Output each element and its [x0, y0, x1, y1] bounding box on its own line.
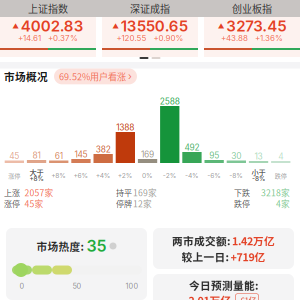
- staticText: -6%: [207, 171, 221, 180]
- staticText: +1.36%: [255, 33, 283, 43]
- staticText: 3218家: [261, 186, 290, 199]
- staticText: 4: [278, 151, 283, 162]
- staticText: 12家: [133, 197, 152, 210]
- staticText: -8%: [229, 171, 243, 180]
- staticText: 市场热度:: [36, 238, 83, 254]
- staticText: -61亿: [237, 294, 256, 300]
- staticText: +8%: [51, 171, 66, 180]
- staticText: +2%: [118, 171, 133, 180]
- staticText: 382: [96, 144, 111, 155]
- staticText: +0.90%: [153, 33, 183, 43]
- staticText: 深证成指: [130, 1, 170, 16]
- staticText: +4%: [96, 171, 111, 180]
- staticText: 4002.83: [21, 17, 84, 35]
- staticText: 61: [55, 151, 63, 161]
- staticText: 492: [184, 142, 199, 153]
- button[interactable]: ▲: [204, 17, 300, 57]
- staticText: 小于: [251, 167, 265, 177]
- staticText: +8%: [29, 175, 43, 182]
- staticText: 169: [141, 149, 154, 160]
- staticText: 2.01万亿: [188, 292, 231, 300]
- staticText: +6%: [73, 171, 88, 180]
- staticText: 今日预测量能:: [189, 277, 258, 293]
- staticText: -8%: [252, 175, 265, 182]
- staticText: 2588: [160, 96, 180, 107]
- staticText: +0.37%: [48, 33, 78, 43]
- staticText: 0: [19, 282, 24, 290]
- staticText: 95: [209, 150, 219, 161]
- staticText: +120.55: [116, 33, 146, 43]
- staticText: 169家: [133, 186, 157, 199]
- button[interactable]: ▲: [0, 17, 96, 57]
- staticText: +43.88: [221, 33, 248, 43]
- staticText: 0%: [142, 171, 153, 180]
- staticText: 69.52%用户看涨: [59, 70, 126, 83]
- staticText: 30: [231, 151, 241, 161]
- staticText: 13: [254, 151, 262, 162]
- staticText: 下跌: [234, 187, 250, 198]
- staticText: 跌停: [234, 198, 250, 209]
- staticText: 1.42万亿: [232, 233, 275, 248]
- staticText: 较上一日:: [181, 249, 228, 264]
- button[interactable]: 市场热度:: [6, 228, 147, 300]
- staticText: 涨停: [4, 198, 20, 209]
- staticText: ▲: [218, 22, 225, 30]
- button[interactable]: 今日预测量能:: [153, 274, 294, 300]
- staticText: 涨停: [8, 171, 20, 180]
- staticText: 1388: [116, 122, 134, 133]
- staticText: 停牌: [116, 198, 132, 209]
- button[interactable]: ▲: [102, 17, 198, 57]
- staticText: 45家: [24, 197, 43, 210]
- staticText: 4家: [276, 197, 290, 210]
- staticText: 上涨: [4, 187, 20, 198]
- staticText: 100: [125, 282, 138, 290]
- staticText: 两市成交额:: [172, 233, 230, 248]
- staticText: ▲: [12, 22, 19, 30]
- staticText: ▲: [112, 22, 119, 30]
- staticText: 跌停: [275, 171, 287, 180]
- staticText: 2057家: [24, 186, 53, 199]
- staticText: -2%: [163, 171, 177, 180]
- staticText: +14.61: [18, 33, 41, 43]
- staticText: 35: [86, 236, 106, 256]
- staticText: ›: [128, 70, 132, 82]
- staticText: 创业板指: [232, 1, 272, 16]
- staticText: 3273.45: [226, 17, 286, 35]
- staticText: 大于: [29, 167, 43, 177]
- button[interactable]: 69.52%用户看涨: [54, 68, 137, 84]
- staticText: 81: [32, 150, 40, 161]
- staticText: +719亿: [230, 249, 265, 264]
- staticText: 13550.65: [121, 17, 188, 35]
- staticText: 45: [9, 151, 19, 161]
- staticText: 持平: [116, 187, 132, 198]
- staticText: 市场概况: [4, 69, 48, 84]
- staticText: 145: [74, 149, 87, 160]
- staticText: 上证指数: [28, 1, 68, 16]
- button[interactable]: 两市成交额:: [153, 228, 294, 269]
- staticText: -4%: [185, 171, 199, 180]
- staticText: 50: [72, 282, 81, 290]
